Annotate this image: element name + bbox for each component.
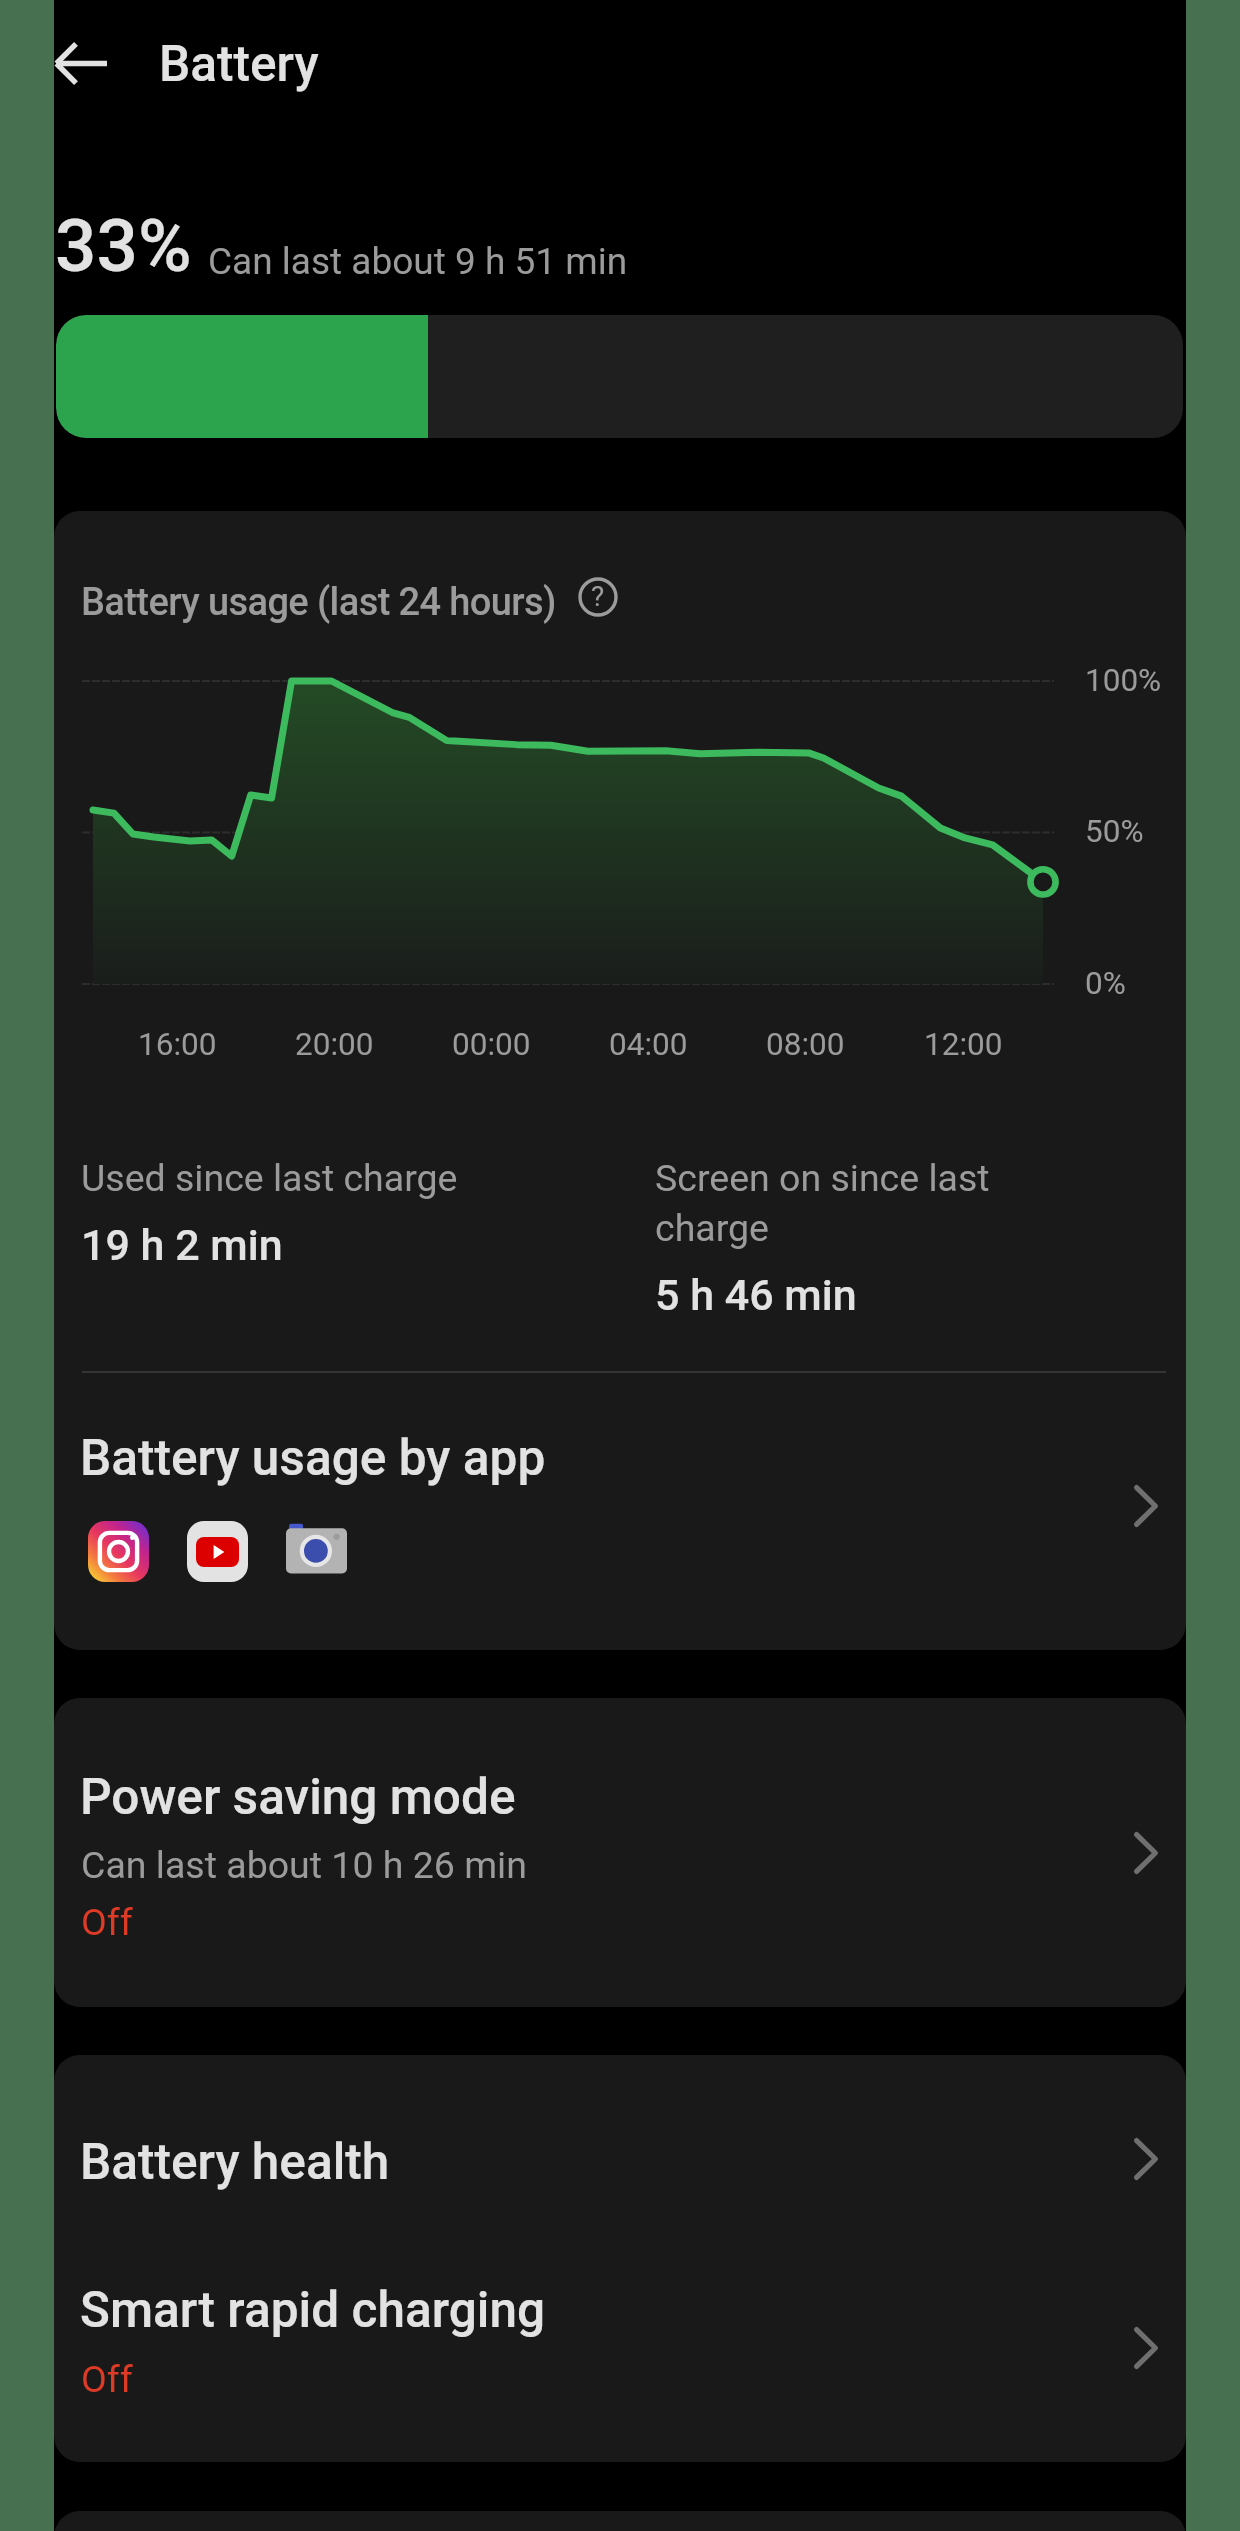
staticText: Power saving mode <box>80 1768 516 1826</box>
staticText: Used since last charge <box>81 1156 458 1200</box>
staticText: Battery health <box>80 2133 390 2191</box>
button[interactable]: Power saving mode <box>54 1698 1186 2007</box>
staticText: 19 h 2 min <box>81 1220 283 1270</box>
staticText: Off <box>81 1900 133 1944</box>
button[interactable]: Smart rapid charging <box>54 2260 1186 2462</box>
staticText: 20:00 <box>295 1026 374 1063</box>
button[interactable]: Battery health <box>54 2055 1186 2260</box>
staticText: 16:00 <box>138 1026 217 1063</box>
staticText: Battery <box>159 35 319 93</box>
staticText: Smart rapid charging <box>80 2281 546 2339</box>
staticText: 100% <box>1085 662 1162 699</box>
button[interactable]: Help <box>568 567 628 627</box>
staticText: 12:00 <box>924 1026 1003 1063</box>
staticText: Off <box>81 2357 133 2401</box>
staticText: 33% <box>55 203 192 289</box>
staticText: 00:00 <box>452 1026 531 1063</box>
staticText: Battery usage by app <box>80 1429 546 1487</box>
staticText: 08:00 <box>766 1026 845 1063</box>
staticText: Screen on since last charge <box>655 1156 990 1251</box>
button[interactable]: Battery usage by app <box>54 1391 1186 1650</box>
staticText: 0% <box>1085 965 1126 1002</box>
staticText: 50% <box>1085 813 1144 850</box>
button[interactable]: Back <box>54 11 159 116</box>
staticText: ? <box>591 580 605 613</box>
staticText: 04:00 <box>609 1026 688 1063</box>
staticText: 5 h 46 min <box>655 1270 857 1320</box>
staticText: Battery usage (last 24 hours) <box>81 580 556 625</box>
staticText: Can last about 9 h 51 min <box>208 240 628 283</box>
staticText: Can last about 10 h 26 min <box>81 1843 527 1887</box>
